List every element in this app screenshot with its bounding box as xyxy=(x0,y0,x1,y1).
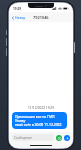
staticText: 7921046 xyxy=(33,15,49,20)
staticText: 19:29 xyxy=(13,7,22,11)
staticText: Сообщение xyxy=(14,136,33,140)
button[interactable]: Отправить xyxy=(64,135,70,141)
button[interactable]: Назад xyxy=(9,13,28,22)
staticText: Приглашаю вас на ГМП Укажу твой счёт в 2… xyxy=(15,114,64,127)
button[interactable]: Отправить через мессенджер xyxy=(56,135,62,141)
button[interactable]: Сообщение xyxy=(12,134,54,141)
staticText: 11/12/2022 19:29 xyxy=(9,106,73,110)
staticText: Назад xyxy=(15,15,26,20)
button[interactable]: Приглашаю вас на ГМП Укажу твой счёт в 2… xyxy=(12,112,67,129)
